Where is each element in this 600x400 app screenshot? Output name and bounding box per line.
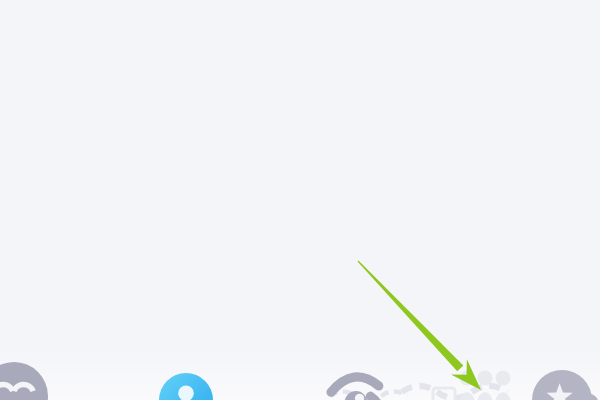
button[interactable]: Discover <box>328 362 390 400</box>
button[interactable]: Messages <box>0 362 60 400</box>
button[interactable]: Favorites <box>532 362 600 400</box>
button[interactable]: Contacts <box>452 362 516 400</box>
button[interactable]: Profile <box>156 362 218 400</box>
